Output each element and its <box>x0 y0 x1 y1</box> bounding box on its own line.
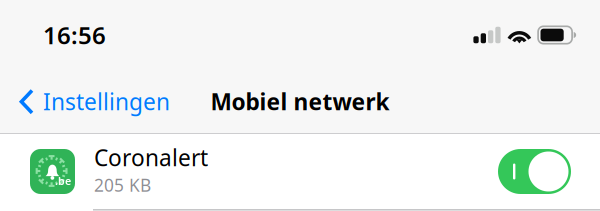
staticText: Mobiel netwerk <box>210 86 389 116</box>
button[interactable]: Instellingen <box>0 81 170 121</box>
staticText: Coronalert <box>94 142 208 172</box>
button[interactable]: Coronalert mobiele data, aan <box>486 134 600 209</box>
staticText: 205 KB <box>94 173 151 196</box>
staticText: 16:56 <box>43 19 106 51</box>
staticText: .be <box>55 174 71 188</box>
staticText: Instellingen <box>43 86 170 116</box>
button[interactable]: .be <box>0 134 486 209</box>
